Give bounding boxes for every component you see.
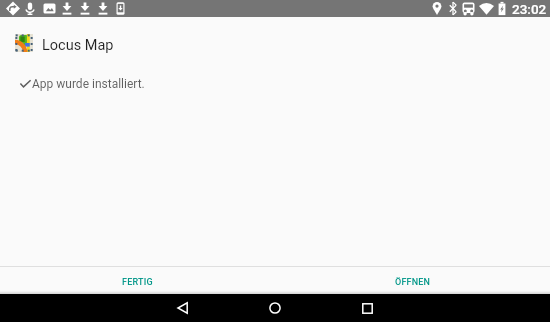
button[interactable]: ÖFFNEN [275,267,550,291]
staticText: App wurde installiert. [32,77,145,91]
button[interactable] [151,294,215,322]
staticText: 23:02 [512,1,547,17]
staticText: FERTIG [122,277,153,288]
button[interactable]: FERTIG [0,267,275,291]
button[interactable] [243,294,307,322]
button[interactable] [335,294,399,322]
staticText: Locus Map [42,37,114,54]
staticText: ÖFFNEN [395,277,431,288]
